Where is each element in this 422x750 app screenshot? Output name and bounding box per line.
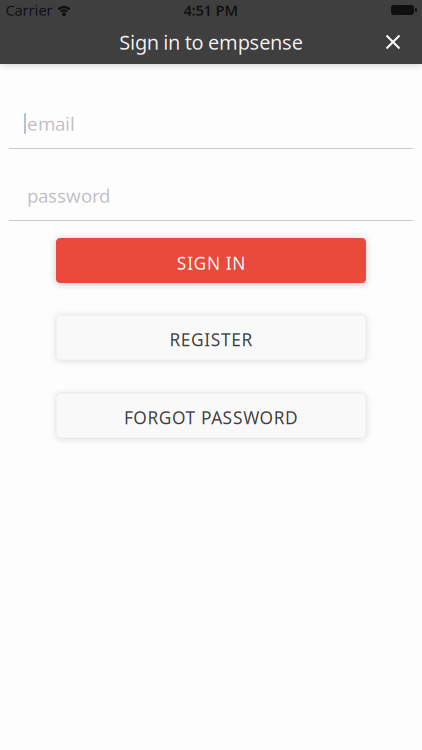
button[interactable]: REGISTER [56,315,366,360]
button[interactable]: Close [371,20,415,64]
staticText: 4:51 PM [183,0,238,20]
staticText: REGISTER [169,328,253,351]
staticText: password [27,183,110,208]
staticText: SIGN IN [177,251,245,274]
button[interactable]: SIGN IN [56,238,366,283]
button[interactable]: FORGOT PASSWORD [56,393,366,438]
staticText: Sign in to empsense [119,29,303,55]
staticText: FORGOT PASSWORD [124,406,298,429]
staticText: Carrier [5,0,52,20]
staticText: email [27,111,75,136]
